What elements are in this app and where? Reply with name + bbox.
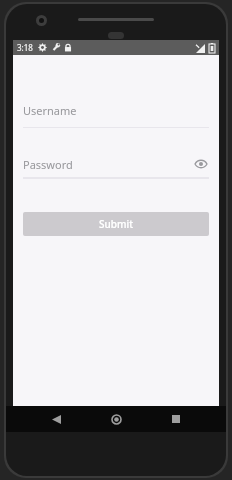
- button[interactable]: Home: [106, 409, 126, 429]
- button[interactable]: Back: [46, 409, 66, 429]
- staticText: Submit: [99, 217, 133, 231]
- button[interactable]: Submit: [23, 212, 209, 236]
- button[interactable]: Password: [23, 156, 209, 179]
- button[interactable]: Recent apps: [166, 409, 186, 429]
- staticText: 3:18: [17, 42, 33, 53]
- button[interactable]: Username: [23, 103, 209, 128]
- button[interactable]: Show password: [193, 156, 209, 172]
- staticText: Password: [23, 157, 193, 172]
- staticText: Username: [23, 103, 77, 118]
